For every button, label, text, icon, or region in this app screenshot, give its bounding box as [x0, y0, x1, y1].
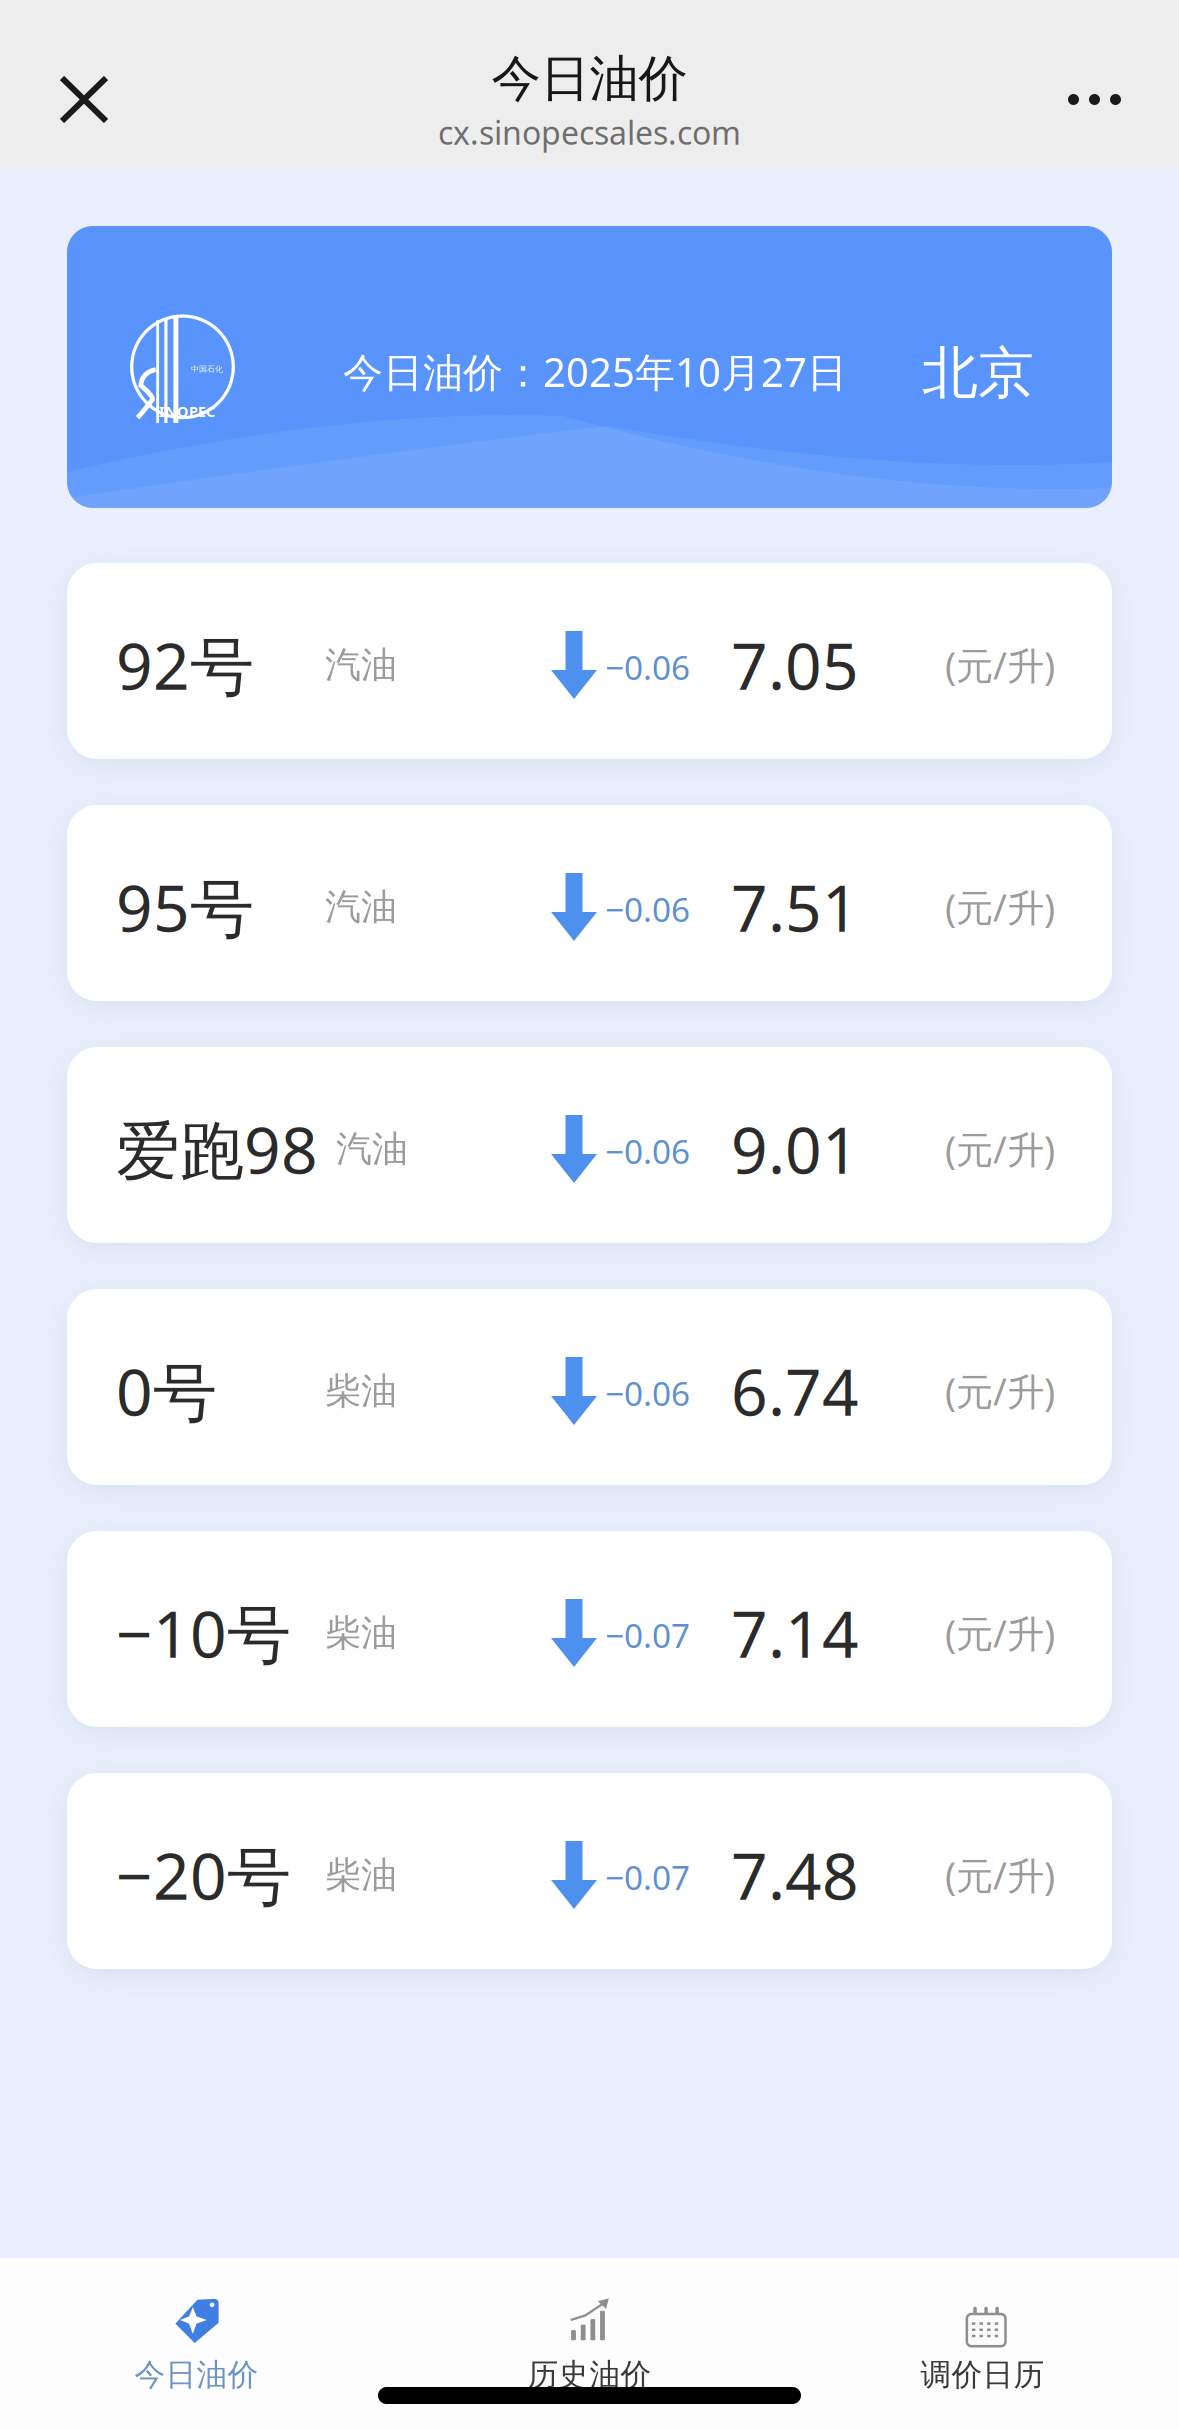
staticText: 7.48 — [731, 1832, 859, 1917]
staticText: 调价日历 — [920, 2356, 1044, 2394]
staticText: −20号 — [116, 1832, 291, 1917]
staticText: (元/升) — [945, 882, 1055, 932]
button[interactable]: −10号 — [67, 1531, 1112, 1727]
staticText: 北京 — [922, 339, 1034, 408]
staticText: (元/升) — [945, 1608, 1055, 1658]
staticText: (元/升) — [945, 640, 1055, 690]
staticText: 0号 — [116, 1348, 217, 1433]
button[interactable]: 爱跑98 — [67, 1047, 1112, 1243]
staticText: −0.06 — [605, 887, 690, 931]
staticText: −0.06 — [605, 1129, 690, 1173]
staticText: 92号 — [116, 622, 254, 707]
staticText: 汽油 — [336, 1127, 408, 1171]
button[interactable]: 调价日历 — [786, 2258, 1179, 2429]
staticText: −0.07 — [605, 1613, 690, 1657]
staticText: 7.14 — [731, 1590, 859, 1675]
staticText: INOPEC — [159, 402, 215, 421]
staticText: cx.sinopecsales.com — [438, 111, 741, 153]
staticText: −0.06 — [605, 645, 690, 689]
staticText: 今日油价 — [134, 2356, 258, 2394]
staticText: 中国石化 — [191, 364, 223, 374]
staticText: 柴油 — [325, 1369, 397, 1413]
staticText: 爱跑98 — [116, 1106, 318, 1191]
staticText: 汽油 — [325, 885, 397, 929]
staticText: 7.51 — [731, 864, 859, 949]
staticText: −0.07 — [605, 1855, 690, 1899]
staticText: −0.06 — [605, 1371, 690, 1415]
button[interactable]: 92号 — [67, 563, 1112, 759]
button[interactable]: 95号 — [67, 805, 1112, 1001]
staticText: 7.05 — [731, 622, 859, 707]
staticText: 今日油价：2025年10月27日 — [343, 345, 847, 398]
staticText: −10号 — [116, 1590, 291, 1675]
staticText: (元/升) — [945, 1124, 1055, 1174]
staticText: 柴油 — [325, 1611, 397, 1655]
button[interactable]: 0号 — [67, 1289, 1112, 1485]
button[interactable]: Close — [0, 0, 146, 168]
staticText: 6.74 — [731, 1348, 859, 1433]
button[interactable]: 历史油价 — [393, 2258, 786, 2429]
staticText: 汽油 — [325, 643, 397, 687]
staticText: (元/升) — [945, 1366, 1055, 1416]
staticText: 95号 — [116, 864, 254, 949]
staticText: 今日油价 — [491, 48, 687, 109]
staticText: 柴油 — [325, 1853, 397, 1897]
button[interactable]: 今日油价 — [0, 2258, 393, 2429]
button[interactable]: More — [1028, 0, 1179, 169]
staticText: 历史油价 — [527, 2356, 651, 2394]
staticText: (元/升) — [945, 1850, 1055, 1900]
button[interactable]: −20号 — [67, 1773, 1112, 1969]
staticText: 9.01 — [731, 1106, 859, 1191]
